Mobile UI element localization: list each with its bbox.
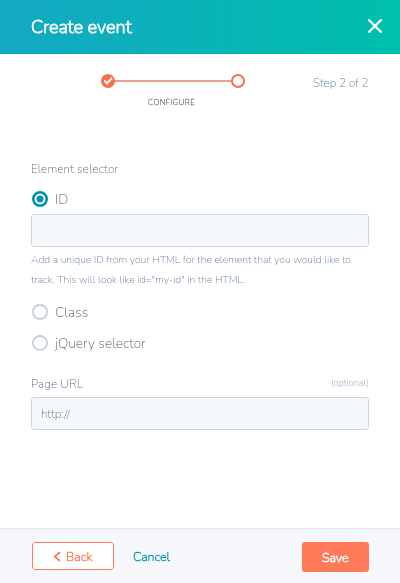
button[interactable]: http:// bbox=[31, 397, 369, 430]
button[interactable]: Back bbox=[32, 542, 114, 570]
staticText: http:// bbox=[41, 406, 70, 422]
button[interactable]: Class bbox=[32, 303, 232, 320]
staticText: ID bbox=[55, 190, 69, 207]
staticText: jQuery selector bbox=[55, 334, 146, 351]
staticText: Create event bbox=[31, 15, 132, 40]
staticText: (optional) bbox=[331, 377, 369, 390]
staticText: Step 2 of 2 bbox=[313, 75, 369, 91]
button[interactable] bbox=[31, 214, 369, 247]
button[interactable]: Save bbox=[302, 542, 369, 572]
staticText: Element selector bbox=[31, 161, 119, 177]
button[interactable]: Step 2 configure bbox=[231, 74, 245, 88]
staticText: Cancel bbox=[133, 548, 171, 565]
staticText: Class bbox=[55, 303, 89, 320]
button[interactable]: Step 1 completed bbox=[101, 74, 115, 88]
staticText: CONFIGURE bbox=[148, 97, 196, 107]
staticText: Back bbox=[66, 548, 93, 565]
staticText: Page URL bbox=[31, 376, 83, 392]
staticText: Save bbox=[322, 549, 349, 566]
button[interactable]: ID bbox=[32, 190, 232, 207]
staticText: Add a unique ID from your HTML for the e… bbox=[31, 252, 351, 266]
button[interactable]: jQuery selector bbox=[32, 334, 232, 351]
button[interactable]: Cancel bbox=[127, 542, 177, 570]
button[interactable]: Close bbox=[360, 11, 390, 41]
staticText: track. This will look like id="my-id" in… bbox=[31, 272, 246, 286]
